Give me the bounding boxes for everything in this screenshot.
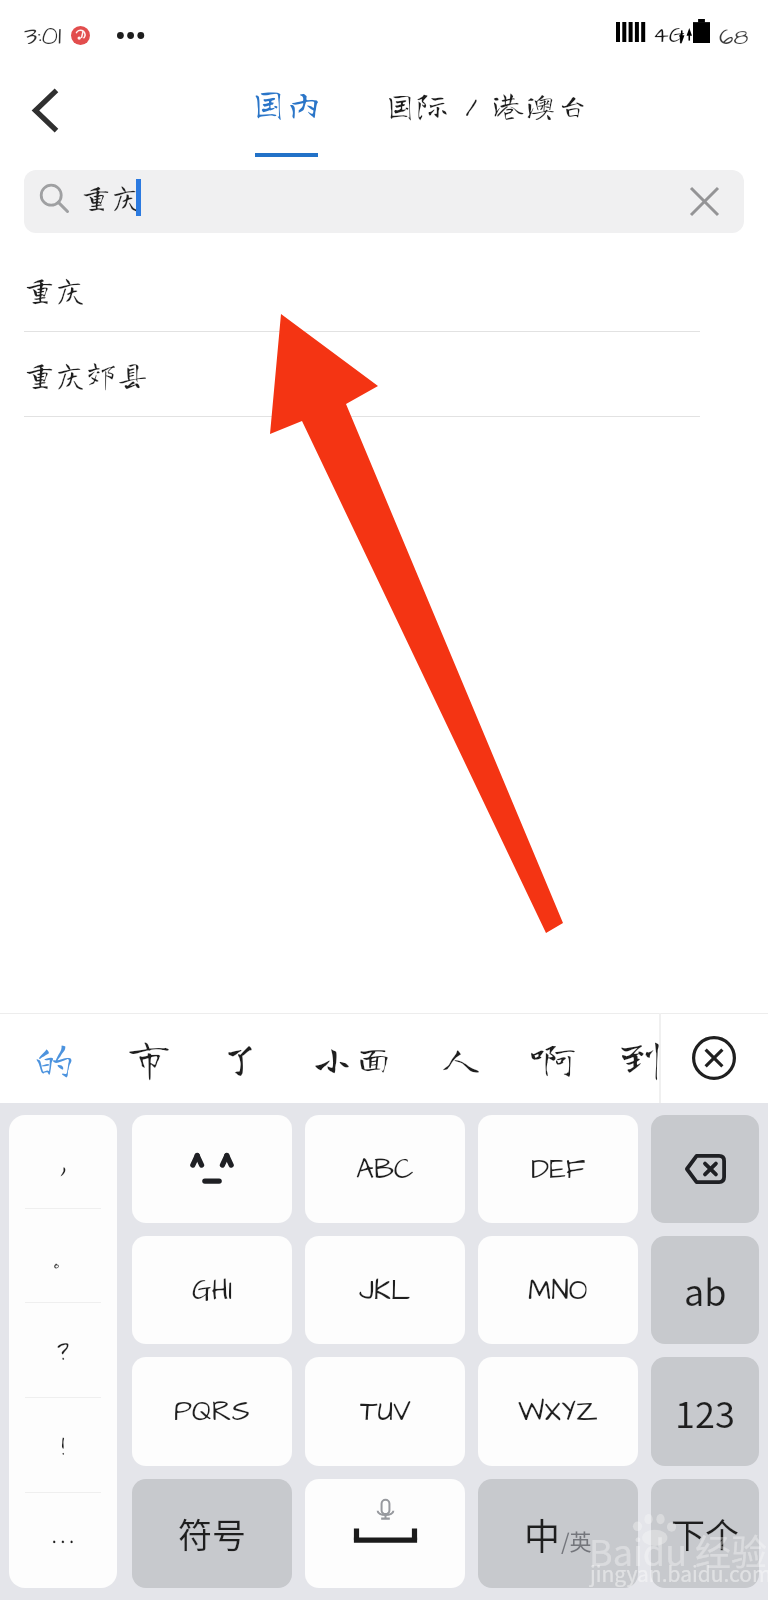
button[interactable]: … xyxy=(9,1493,117,1588)
button[interactable]: ？ xyxy=(9,1303,117,1398)
button[interactable]: 国内 xyxy=(244,61,328,155)
button[interactable]: PQRS xyxy=(132,1357,292,1466)
button[interactable]: ！ xyxy=(9,1398,117,1493)
button[interactable]: 下个 xyxy=(651,1479,759,1588)
staticText: 中 xyxy=(524,1508,561,1560)
button[interactable]: 的 xyxy=(8,1013,100,1103)
button[interactable]: ABC xyxy=(305,1115,465,1223)
button[interactable]: ， xyxy=(9,1115,117,1209)
staticText: 到 xyxy=(619,1037,662,1079)
button[interactable]: Clear text xyxy=(682,170,726,233)
staticText: 的 xyxy=(33,1037,76,1079)
button[interactable]: 重庆郊县 xyxy=(0,332,768,417)
staticText: 下个 xyxy=(671,1509,739,1558)
staticText: 了 xyxy=(219,1037,262,1079)
staticText: 4G xyxy=(653,19,685,51)
staticText: 重庆 xyxy=(24,274,86,305)
button[interactable]: GHI xyxy=(132,1236,292,1344)
button[interactable]: TUV xyxy=(305,1357,465,1466)
button[interactable]: Backspace xyxy=(651,1115,759,1223)
staticText: ab xyxy=(684,1264,727,1316)
button[interactable]: 。 xyxy=(9,1209,117,1303)
button[interactable]: Emoticons xyxy=(132,1115,292,1223)
staticText: MNO xyxy=(528,1271,588,1310)
staticText: jingyan.baidu.com xyxy=(590,1558,768,1588)
button[interactable]: MNO xyxy=(478,1236,638,1344)
staticText: 3:01 xyxy=(24,18,62,54)
staticText: Baidu 经验 xyxy=(589,1524,768,1576)
staticText: 国内 xyxy=(250,85,323,121)
button[interactable]: DEF xyxy=(478,1115,638,1223)
button[interactable]: Space xyxy=(305,1479,465,1588)
staticText: 123 xyxy=(675,1386,735,1438)
staticText: ABC xyxy=(356,1150,414,1189)
staticText: 。 xyxy=(48,1241,78,1271)
button[interactable]: 啊 xyxy=(507,1013,599,1103)
staticText: 重庆 xyxy=(81,182,141,212)
button[interactable]: 了 xyxy=(194,1013,286,1103)
staticText: 人 xyxy=(440,1037,483,1079)
button[interactable]: WXYZ xyxy=(478,1357,638,1466)
staticText: PQRS xyxy=(174,1392,250,1431)
staticText: 啊 xyxy=(532,1037,575,1079)
staticText: 小面 xyxy=(311,1037,396,1079)
button[interactable]: 小面 xyxy=(261,1013,445,1103)
staticText: ！ xyxy=(48,1431,78,1461)
staticText: … xyxy=(48,1526,78,1556)
staticText: 市 xyxy=(128,1037,171,1079)
button[interactable]: 到 xyxy=(594,1013,686,1103)
staticText: WXYZ xyxy=(518,1392,599,1431)
button[interactable]: 中 xyxy=(478,1479,638,1588)
button[interactable]: Hide keyboard xyxy=(659,1013,768,1103)
staticText: ？ xyxy=(48,1336,78,1366)
staticText: GHI xyxy=(192,1271,233,1310)
button[interactable]: Back xyxy=(11,76,79,144)
button[interactable]: 重庆 xyxy=(0,247,768,332)
button[interactable]: 重庆 xyxy=(24,170,744,233)
staticText: 国际 / 港澳台 xyxy=(384,89,589,121)
button[interactable]: 市 xyxy=(103,1013,195,1103)
button[interactable]: ab xyxy=(651,1236,759,1344)
button[interactable]: 符号 xyxy=(132,1479,292,1588)
staticText: /英 xyxy=(561,1524,592,1556)
button[interactable]: 123 xyxy=(651,1357,759,1466)
staticText: 符号 xyxy=(178,1509,246,1558)
staticText: JKL xyxy=(359,1271,411,1310)
button[interactable]: JKL xyxy=(305,1236,465,1344)
staticText: ， xyxy=(48,1147,78,1177)
staticText: 68 xyxy=(719,21,749,53)
staticText: TUV xyxy=(360,1392,411,1431)
staticText: DEF xyxy=(531,1150,586,1189)
button[interactable]: 人 xyxy=(415,1013,507,1103)
button[interactable]: 国际 / 港澳台 xyxy=(372,61,596,155)
staticText: 重庆郊县 xyxy=(24,359,148,390)
